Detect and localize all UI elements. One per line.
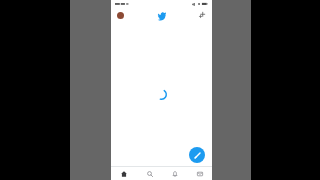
button[interactable]: Notifications <box>162 167 187 180</box>
button[interactable]: Search <box>137 167 162 180</box>
button[interactable]: Top Tweets settings <box>198 11 206 19</box>
button[interactable]: Messages <box>187 167 212 180</box>
button[interactable]: Home <box>111 167 137 180</box>
button[interactable]: Compose Tweet <box>189 147 205 163</box>
button[interactable]: Account <box>117 12 124 19</box>
